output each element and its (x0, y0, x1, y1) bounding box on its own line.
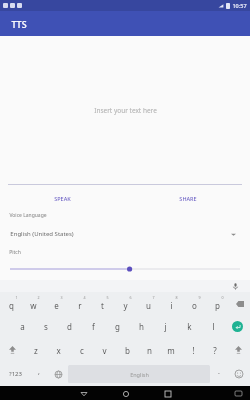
button[interactable]: English (United States) (0, 227, 250, 241)
button[interactable]: Pitch slider (0, 264, 250, 274)
button[interactable]: f (81, 315, 105, 338)
button[interactable]: 1 (0, 292, 22, 315)
button[interactable]: Backspace (229, 292, 250, 315)
staticText: g (115, 321, 120, 332)
staticText: Voice Language (9, 212, 47, 219)
staticText: 6 (129, 295, 132, 300)
button[interactable]: j (153, 315, 177, 338)
button[interactable]: g (105, 315, 129, 338)
staticText: ?123 (9, 370, 22, 378)
staticText: . (218, 367, 220, 377)
button[interactable]: m (160, 338, 182, 362)
staticText: w (30, 300, 37, 311)
staticText: i (170, 300, 173, 311)
staticText: u (146, 300, 151, 311)
button[interactable]: . (210, 362, 228, 386)
staticText: d (67, 321, 72, 332)
button[interactable]: b (116, 338, 138, 362)
button[interactable]: SPEAK (0, 191, 125, 205)
staticText: SHARE (179, 195, 197, 202)
button[interactable]: Back (77, 387, 90, 400)
staticText: 2 (37, 295, 40, 300)
staticText: v (102, 345, 107, 356)
staticText: r (78, 300, 82, 311)
staticText: 0 (221, 295, 224, 300)
button[interactable]: d (57, 315, 81, 338)
staticText: l (212, 321, 215, 332)
staticText: e (54, 300, 59, 311)
staticText: English (130, 371, 149, 378)
button[interactable]: 7 (137, 292, 160, 315)
staticText: h (139, 321, 144, 332)
button[interactable]: 9 (183, 292, 206, 315)
staticText: 3 (60, 295, 63, 300)
staticText: ? (213, 345, 217, 356)
button[interactable]: a (11, 315, 34, 338)
staticText: 5 (106, 295, 109, 300)
staticText: x (56, 345, 61, 356)
button[interactable]: l (201, 315, 225, 338)
staticText: j (164, 321, 167, 332)
button[interactable]: s (34, 315, 57, 338)
button[interactable]: Switch keyboard (233, 388, 243, 398)
staticText: y (123, 300, 128, 311)
button[interactable]: Recent apps (161, 387, 174, 400)
staticText: c (80, 345, 84, 356)
button[interactable]: z (24, 338, 47, 362)
staticText: q (9, 300, 14, 311)
button[interactable]: 8 (160, 292, 183, 315)
button[interactable]: ? (204, 338, 226, 362)
button[interactable]: 4 (68, 292, 91, 315)
staticText: SPEAK (54, 195, 71, 202)
staticText: k (187, 321, 192, 332)
button[interactable]: 2 (22, 292, 45, 315)
button[interactable]: Shift (0, 338, 24, 362)
button[interactable]: Home (119, 387, 132, 400)
button[interactable]: 3 (45, 292, 68, 315)
staticText: f (92, 321, 95, 332)
button[interactable]: n (138, 338, 160, 362)
staticText: 7 (152, 295, 155, 300)
button[interactable]: 0 (206, 292, 229, 315)
staticText: 10:57 (232, 2, 247, 9)
staticText: , (38, 367, 40, 377)
staticText: 9 (198, 295, 201, 300)
button[interactable]: ?123 (0, 362, 30, 386)
button[interactable]: k (177, 315, 201, 338)
staticText: TTS (11, 18, 27, 30)
staticText: 4 (83, 295, 86, 300)
staticText: p (215, 300, 220, 311)
staticText: English (United States) (10, 230, 74, 238)
staticText: z (34, 345, 38, 356)
button[interactable]: v (93, 338, 116, 362)
staticText: 8 (175, 295, 178, 300)
staticText: 1 (15, 295, 18, 300)
button[interactable]: Change keyboard language (48, 362, 68, 386)
button[interactable]: English (68, 365, 210, 383)
button[interactable]: 5 (91, 292, 114, 315)
button[interactable]: Emoji (228, 362, 250, 386)
button[interactable]: , (30, 362, 48, 386)
button[interactable]: Shift (226, 338, 250, 362)
staticText: s (44, 321, 48, 332)
button[interactable]: x (47, 338, 70, 362)
button[interactable]: Voice input (231, 282, 240, 291)
staticText: o (192, 300, 197, 311)
staticText: m (167, 345, 175, 356)
staticText: Pitch (9, 249, 21, 256)
staticText: ! (192, 345, 195, 356)
staticText: Insert your text here (94, 106, 157, 115)
button[interactable]: SHARE (125, 191, 250, 205)
button[interactable]: Enter (225, 315, 250, 338)
button[interactable]: 6 (114, 292, 137, 315)
button[interactable]: h (129, 315, 153, 338)
staticText: b (125, 345, 130, 356)
button[interactable]: ! (182, 338, 204, 362)
staticText: n (147, 345, 152, 356)
staticText: t (101, 300, 104, 311)
staticText: a (20, 321, 25, 332)
button[interactable]: c (70, 338, 93, 362)
